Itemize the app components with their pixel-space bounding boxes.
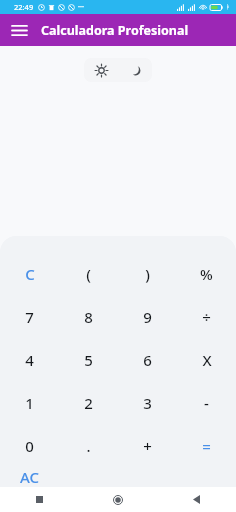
button[interactable]: 3 [118, 381, 177, 424]
staticText: . [86, 436, 91, 456]
button[interactable]: 5 [59, 338, 118, 381]
staticText: C [25, 264, 35, 284]
button[interactable]: C [0, 252, 59, 295]
staticText: 1 [25, 393, 34, 413]
staticText: ÷ [202, 307, 211, 327]
staticText: ᚼ [226, 4, 230, 10]
button[interactable]: 7 [0, 295, 59, 338]
button[interactable]: 8 [59, 295, 118, 338]
staticText: 2 [84, 393, 93, 413]
button[interactable]: ÷ [177, 295, 236, 338]
button[interactable]: Home [78, 487, 157, 512]
button[interactable]: ) [118, 252, 177, 295]
staticText: 8 [84, 307, 93, 327]
staticText: 0 [25, 436, 34, 456]
button[interactable]: + [118, 424, 177, 467]
button[interactable]: Dark theme [118, 58, 152, 82]
staticText: 22:49 [14, 2, 34, 12]
button[interactable]: Menu [6, 17, 32, 43]
button[interactable]: % [177, 252, 236, 295]
staticText: ( [86, 264, 91, 284]
staticText: = [202, 436, 211, 456]
staticText: 7 [25, 307, 34, 327]
staticText: 4 [25, 350, 34, 370]
button[interactable]: Recent apps [0, 487, 78, 512]
staticText: 6 [143, 350, 152, 370]
button[interactable]: Back [157, 487, 236, 512]
button[interactable]: 0 [0, 424, 59, 467]
staticText: % [200, 264, 213, 284]
staticText: ) [145, 264, 150, 284]
staticText: + [143, 436, 152, 456]
button[interactable]: . [59, 424, 118, 467]
staticText: AC [20, 467, 40, 487]
staticText: 5 [84, 350, 93, 370]
button[interactable]: 9 [118, 295, 177, 338]
button[interactable]: = [177, 424, 236, 467]
button[interactable]: - [177, 381, 236, 424]
staticText: 9 [143, 307, 152, 327]
staticText: - [204, 393, 209, 413]
button[interactable]: ( [59, 252, 118, 295]
button[interactable]: Light theme [84, 58, 118, 82]
staticText: 3 [143, 393, 152, 413]
button[interactable]: 2 [59, 381, 118, 424]
button[interactable]: AC [0, 467, 59, 487]
staticText: ··· [78, 2, 84, 12]
button[interactable]: 6 [118, 338, 177, 381]
staticText: Calculadora Profesional [41, 22, 189, 39]
button[interactable]: 1 [0, 381, 59, 424]
button[interactable]: 4 [0, 338, 59, 381]
button[interactable]: X [177, 338, 236, 381]
staticText: X [202, 350, 212, 370]
